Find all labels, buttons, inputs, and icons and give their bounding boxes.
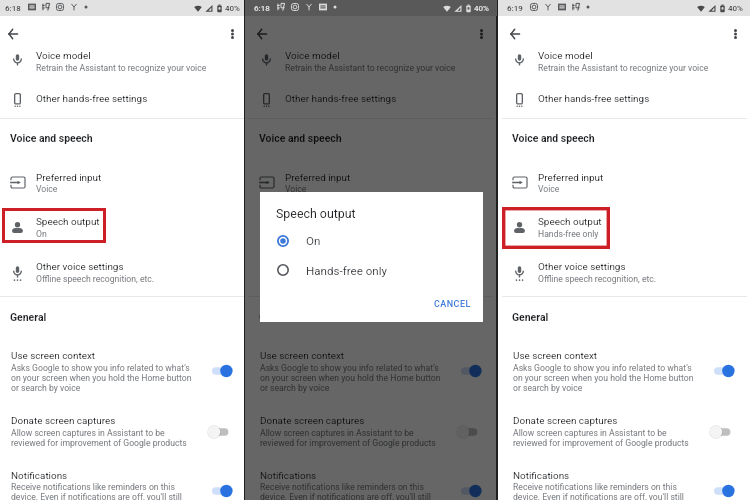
button[interactable]: Donate screen captures	[502, 413, 747, 451]
staticText: General	[512, 311, 549, 323]
button[interactable]: Speech output	[249, 213, 493, 247]
staticText: Allow screen captures in Assistant to be	[513, 428, 667, 438]
staticText: Voice and speech	[10, 132, 93, 144]
button[interactable]: More options	[725, 24, 745, 44]
button[interactable]: Switch on	[211, 482, 235, 500]
button[interactable]: Switch on	[211, 362, 235, 380]
staticText: device. Even if notifications are off, y…	[11, 492, 182, 500]
button[interactable]: Navigate up	[3, 24, 23, 44]
staticText: On	[306, 234, 321, 248]
staticText: Receive notifications like reminders on …	[260, 482, 424, 492]
button[interactable]: Donate screen captures	[249, 413, 493, 451]
staticText: Notifications	[11, 470, 68, 482]
staticText: On	[36, 229, 47, 239]
staticText: Notifications	[260, 470, 317, 482]
staticText: device. Even if notifications are off, y…	[260, 492, 431, 500]
staticText: Retrain the Assistant to recognize your …	[538, 63, 709, 73]
staticText: Other hands-free settings	[538, 93, 650, 105]
staticText: CANCEL	[434, 299, 471, 310]
staticText: Speech output	[285, 216, 349, 228]
staticText: Voice	[285, 229, 307, 239]
button[interactable]: Navigate up	[505, 24, 525, 44]
button[interactable]: Voice model	[0, 46, 244, 77]
staticText: Donate screen captures	[260, 415, 365, 427]
button[interactable]: Use screen context	[249, 348, 493, 396]
button[interactable]: Use screen context	[0, 348, 244, 396]
button[interactable]: Other voice settings	[0, 258, 244, 292]
staticText: Retrain the Assistant to recognize your …	[36, 63, 207, 73]
button[interactable]: Switch off	[211, 423, 235, 441]
staticText: Other voice settings	[285, 261, 373, 273]
button[interactable]: Other hands-free settings	[502, 87, 747, 118]
staticText: on your screen when you hold the Home bu…	[513, 373, 694, 383]
button[interactable]: Preferred input	[502, 168, 747, 202]
button[interactable]: Switch on	[713, 362, 737, 380]
staticText: Voice and speech	[512, 132, 595, 144]
staticText: on your screen when you hold the Home bu…	[260, 373, 441, 383]
staticText: 40%	[225, 4, 240, 13]
staticText: Preferred input	[36, 172, 102, 184]
staticText: Use screen context	[513, 350, 598, 362]
staticText: device. Even if notifications are off, y…	[513, 492, 684, 500]
staticText: Notifications	[513, 470, 570, 482]
button[interactable]: Navigate up	[252, 24, 272, 44]
staticText: Speech output	[538, 216, 602, 228]
button[interactable]: Donate screen captures	[0, 413, 244, 451]
staticText: on your screen when you hold the Home bu…	[11, 373, 192, 383]
staticText: Retrain the Assistant to recognize your …	[285, 63, 456, 73]
staticText: General	[10, 311, 47, 323]
button[interactable]: Switch off	[713, 423, 737, 441]
button[interactable]: Switch on	[460, 362, 484, 380]
staticText: 6:19	[507, 4, 523, 13]
button[interactable]: More options	[222, 24, 242, 44]
staticText: Receive notifications like reminders on …	[11, 482, 175, 492]
button[interactable]: Speech output	[502, 213, 747, 247]
staticText: General	[259, 311, 296, 323]
staticText: Donate screen captures	[513, 415, 618, 427]
button[interactable]: Other hands-free settings	[249, 87, 493, 118]
staticText: Voice model	[36, 50, 91, 62]
button[interactable]: Notifications	[502, 468, 747, 500]
staticText: or search by voice	[260, 383, 330, 393]
button[interactable]: Other voice settings	[502, 258, 747, 292]
staticText: Voice	[36, 184, 58, 194]
staticText: reviewed for improvement of Google produ…	[11, 438, 187, 448]
staticText: Allow screen captures in Assistant to be	[260, 428, 414, 438]
staticText: Other hands-free settings	[36, 93, 148, 105]
staticText: Offline speech recognition, etc.	[538, 274, 657, 284]
staticText: Speech output	[36, 216, 100, 228]
staticText: Use screen context	[11, 350, 96, 362]
button[interactable]: CANCEL	[426, 292, 476, 313]
button[interactable]: Hands-free only	[260, 258, 483, 282]
button[interactable]: Speech output	[0, 213, 244, 247]
button[interactable]: Switch on	[713, 482, 737, 500]
button[interactable]: Voice model	[502, 46, 747, 77]
button[interactable]: Notifications	[0, 468, 244, 500]
staticText: Voice and speech	[259, 132, 342, 144]
staticText: Other voice settings	[538, 261, 626, 273]
staticText: reviewed for improvement of Google produ…	[513, 438, 689, 448]
staticText: Other voice settings	[36, 261, 124, 273]
button[interactable]: Other voice settings	[249, 258, 493, 292]
staticText: reviewed for improvement of Google produ…	[260, 438, 436, 448]
button[interactable]: More options	[471, 24, 491, 44]
staticText: Speech output	[276, 206, 356, 221]
button[interactable]: On	[260, 229, 483, 253]
button[interactable]: Voice model	[249, 46, 493, 77]
staticText: Hands-free only	[306, 264, 388, 278]
button[interactable]: Notifications	[249, 468, 493, 500]
staticText: Voice model	[538, 50, 593, 62]
button[interactable]: Switch on	[460, 482, 484, 500]
staticText: 40%	[728, 4, 743, 13]
button[interactable]: Other hands-free settings	[0, 87, 244, 118]
staticText: or search by voice	[513, 383, 583, 393]
button[interactable]: Preferred input	[249, 168, 493, 202]
staticText: Use screen context	[260, 350, 345, 362]
button[interactable]: Preferred input	[0, 168, 244, 202]
staticText: Other hands-free settings	[285, 93, 397, 105]
staticText: Receive notifications like reminders on …	[513, 482, 677, 492]
button[interactable]: Switch off	[460, 423, 484, 441]
button[interactable]: Use screen context	[502, 348, 747, 396]
staticText: Asks Google to show you info related to …	[260, 363, 439, 373]
staticText: Preferred input	[285, 172, 351, 184]
